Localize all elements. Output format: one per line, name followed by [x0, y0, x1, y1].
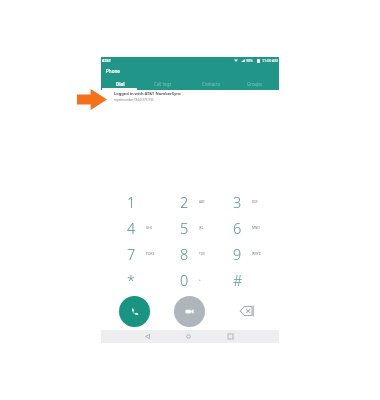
button[interactable]: 2	[158, 187, 210, 212]
staticText: #	[233, 270, 243, 290]
staticText: 11:00 AM	[262, 58, 278, 63]
button[interactable]: 9	[211, 239, 263, 264]
staticText: myattnumber, (844) 373-933	[114, 98, 154, 102]
staticText: Groups	[247, 81, 263, 87]
button[interactable]: 6	[211, 213, 263, 238]
staticText: Phone	[106, 68, 121, 74]
staticText: JKL	[199, 226, 204, 230]
staticText: MNO	[252, 226, 260, 230]
staticText: Call logs	[154, 81, 172, 87]
staticText: 8	[180, 244, 189, 264]
staticText: WXYZ	[252, 252, 261, 256]
staticText: GHI	[146, 226, 152, 230]
staticText: *	[127, 270, 135, 290]
staticText: TUV	[199, 252, 206, 256]
staticText: Dial	[116, 81, 125, 87]
button[interactable]: Video call	[174, 296, 205, 327]
button[interactable]: *	[105, 265, 157, 290]
button[interactable]: 5	[158, 213, 210, 238]
button[interactable]: #	[211, 265, 263, 290]
staticText: 1	[127, 192, 136, 212]
button[interactable]: Call logs	[141, 77, 185, 90]
button[interactable]: 7	[105, 239, 157, 264]
button[interactable]: 3	[211, 187, 263, 212]
staticText: AT&T	[102, 58, 111, 63]
staticText: Logged in with AT&T NumberSync	[114, 91, 182, 96]
staticText: DEF	[252, 200, 258, 204]
button[interactable]: 1	[105, 187, 157, 212]
button[interactable]: Backspace	[235, 300, 257, 322]
button[interactable]: Home	[182, 330, 195, 343]
staticText: ABC	[199, 200, 206, 204]
button[interactable]: Groups	[233, 77, 277, 90]
button[interactable]: Call	[119, 296, 150, 327]
staticText: 5	[180, 218, 189, 238]
staticText: 7	[127, 244, 136, 264]
staticText: 3	[233, 192, 242, 212]
button[interactable]: Back	[141, 330, 154, 343]
button[interactable]: Recents	[224, 330, 237, 343]
staticText: Contacts	[202, 81, 220, 87]
staticText: +	[199, 278, 201, 282]
button[interactable]: Dial	[98, 77, 142, 90]
button[interactable]: Contacts	[189, 77, 233, 90]
staticText: 0	[180, 270, 189, 290]
staticText: 2	[180, 192, 189, 212]
staticText: 9	[233, 244, 242, 264]
staticText: 4	[127, 218, 136, 238]
button[interactable]: 4	[105, 213, 157, 238]
staticText: 98%	[246, 58, 253, 63]
staticText: 6	[233, 218, 242, 238]
button[interactable]: 0	[158, 265, 210, 290]
staticText: PQRS	[146, 252, 155, 256]
button[interactable]: 8	[158, 239, 210, 264]
